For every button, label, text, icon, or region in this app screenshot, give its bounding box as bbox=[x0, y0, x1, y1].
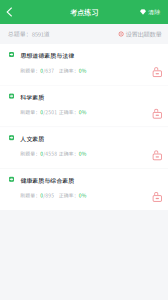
staticText: 0% bbox=[79, 108, 87, 116]
button[interactable]: 返回 bbox=[0, 0, 19, 24]
staticText: 刷题量： bbox=[20, 67, 40, 74]
staticText: /2501 bbox=[43, 108, 57, 116]
staticText: 清除 bbox=[148, 8, 160, 16]
staticText: 正确率： bbox=[59, 67, 79, 74]
staticText: 0% bbox=[79, 67, 87, 74]
button[interactable]: 思想道德素质与法律 bbox=[0, 44, 168, 85]
staticText: 设置出题数量 bbox=[125, 29, 161, 39]
staticText: 总题量：8591道 bbox=[8, 30, 50, 38]
button[interactable]: 科学素质 bbox=[0, 86, 168, 127]
staticText: 刷题量： bbox=[20, 150, 40, 157]
staticText: 考点练习 bbox=[70, 7, 98, 17]
button[interactable]: 健康素质与综合素质 bbox=[0, 169, 168, 210]
staticText: 科学素质 bbox=[20, 93, 44, 102]
staticText: 0 bbox=[40, 150, 43, 157]
staticText: 思想道德素质与法律 bbox=[20, 51, 74, 60]
button[interactable]: 人文素质 bbox=[0, 127, 168, 168]
staticText: 0 bbox=[40, 67, 43, 74]
staticText: 刷题量： bbox=[20, 108, 40, 116]
staticText: 0 bbox=[40, 192, 43, 199]
staticText: 刷题量： bbox=[20, 192, 40, 199]
staticText: 0% bbox=[79, 192, 87, 199]
staticText: 正确率： bbox=[59, 192, 79, 199]
staticText: 人文素质 bbox=[20, 135, 44, 143]
button[interactable]: 清除 bbox=[140, 0, 168, 24]
staticText: /4558 bbox=[43, 150, 57, 157]
staticText: /637 bbox=[43, 67, 54, 74]
staticText: 健康素质与综合素质 bbox=[20, 176, 74, 185]
staticText: 0% bbox=[79, 150, 87, 157]
staticText: /895 bbox=[43, 192, 54, 199]
staticText: 正确率： bbox=[59, 108, 79, 116]
button[interactable]: 设置出题数量 bbox=[119, 29, 168, 39]
staticText: 正确率： bbox=[59, 150, 79, 157]
staticText: 0 bbox=[40, 108, 43, 116]
